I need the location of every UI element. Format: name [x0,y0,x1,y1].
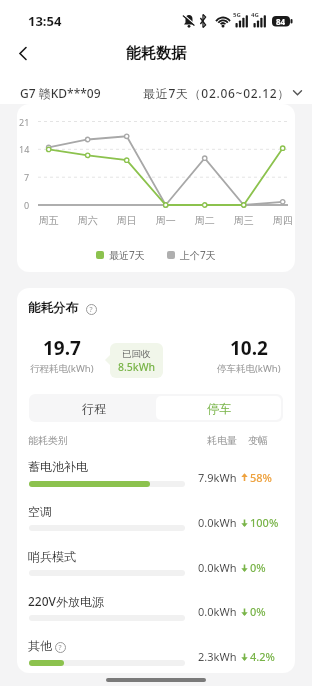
staticText: 能耗数据 [126,44,186,63]
staticText: 哨兵模式 [28,549,76,564]
staticText: 空调 [28,504,52,519]
staticText: 其他 [28,638,52,653]
staticText: 行程耗电(kWh) [30,362,94,375]
staticText: 最近7天 [109,248,145,262]
button[interactable] [86,304,97,315]
staticText: 13:54 [28,12,62,30]
button[interactable]: 最近7天（02.06~02.12） [143,85,302,101]
button[interactable]: 停车 [156,396,281,420]
button[interactable] [55,642,66,653]
staticText: 100% [250,515,279,530]
staticText: 行程 [82,401,106,416]
staticText: G7 赣KD***09 [20,85,101,101]
staticText: 停车 [207,401,231,416]
staticText: 0.0kWh [198,515,237,530]
staticText: 8.5kWh [118,360,156,374]
staticText: 变幅 [248,434,268,447]
staticText: 10.2 [230,335,268,361]
staticText: 能耗类别 [28,434,68,447]
button[interactable] [8,38,38,68]
staticText: 0% [250,560,266,575]
staticText: 19.7 [43,335,81,361]
staticText: 最近7天（02.06~02.12） [143,85,291,101]
staticText: 220V外放电源 [28,593,104,609]
staticText: 已回收 [122,348,151,360]
staticText: 58% [250,470,272,485]
staticText: 0.0kWh [198,560,237,575]
staticText: 停车耗电(kWh) [217,362,281,375]
staticText: 2.3kWh [198,649,237,664]
staticText: 上个7天 [180,248,216,262]
staticText: 4.2% [250,649,275,664]
button[interactable]: 行程 [31,396,156,420]
staticText: 耗电量 [207,434,237,447]
staticText: 7.9kWh [198,470,237,485]
staticText: 能耗分布 [28,300,78,316]
staticText: 0% [250,604,266,619]
staticText: 0.0kWh [198,604,237,619]
staticText: 蓄电池补电 [28,459,88,474]
